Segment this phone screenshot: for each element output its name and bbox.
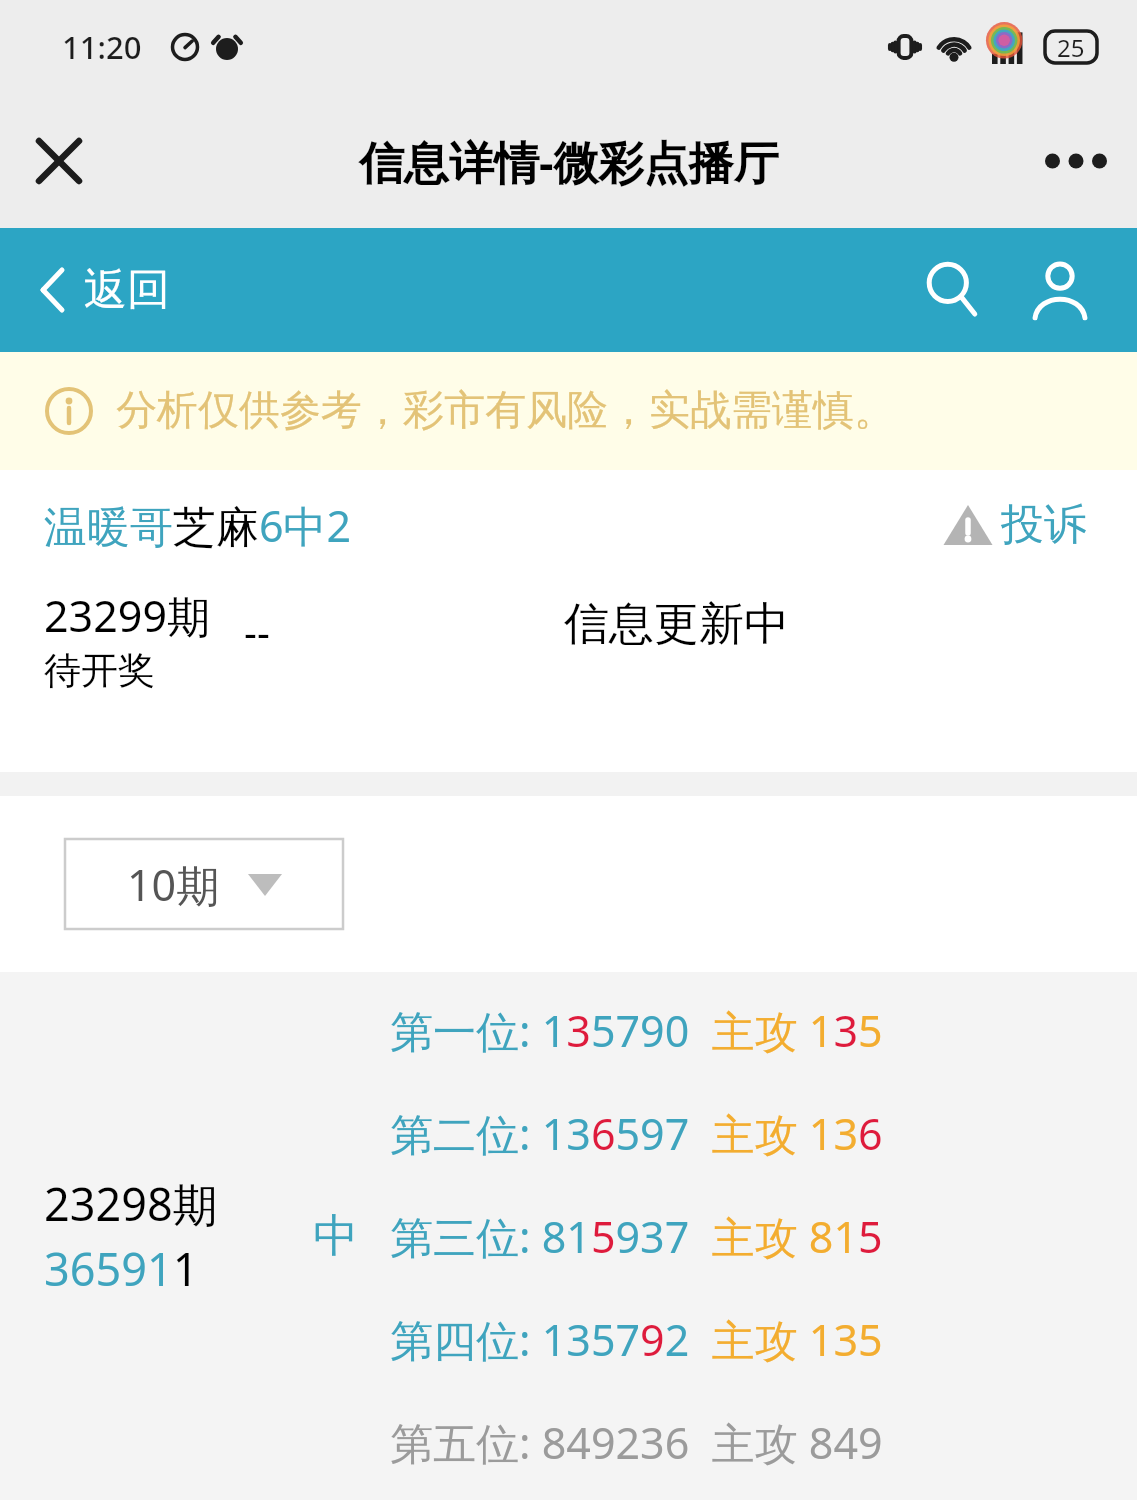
button[interactable]: More options	[1037, 122, 1115, 200]
button[interactable]: 返回	[28, 253, 182, 327]
staticText: 第四位: 135792 主攻 135	[390, 1310, 883, 1369]
staticText: 投诉	[1001, 498, 1087, 552]
staticText: 11:20	[62, 26, 142, 68]
staticText: 返回	[84, 263, 170, 317]
staticText: 待开奖	[44, 647, 155, 694]
staticText: --	[244, 604, 564, 658]
button[interactable]: Profile	[1017, 247, 1103, 333]
staticText: 第二位: 136597 主攻 136	[390, 1104, 883, 1163]
staticText: 第五位: 849236 主攻 849	[390, 1413, 883, 1472]
staticText: 第一位: 135790 主攻 135	[390, 1001, 883, 1060]
staticText: 25	[1057, 31, 1085, 64]
staticText: 10期	[127, 855, 220, 914]
staticText: 365911	[44, 1238, 199, 1299]
staticText: 23298期	[44, 1173, 218, 1234]
staticText: 23299期	[44, 586, 210, 645]
button[interactable]: 10期	[64, 838, 344, 930]
button[interactable]: 投诉	[937, 492, 1093, 558]
staticText: 信息详情-微彩点播厅	[359, 131, 779, 192]
staticText: 第三位: 815937 主攻 815	[390, 1207, 883, 1266]
staticText: 中	[313, 1208, 358, 1265]
button[interactable]: Search	[909, 247, 995, 333]
button[interactable]: Close	[22, 124, 96, 198]
staticText: 分析仅供参考，彩市有风险，实战需谨慎。	[116, 385, 895, 437]
staticText: 信息更新中	[564, 596, 789, 653]
staticText: 温暖哥芝麻6中2	[44, 496, 352, 555]
